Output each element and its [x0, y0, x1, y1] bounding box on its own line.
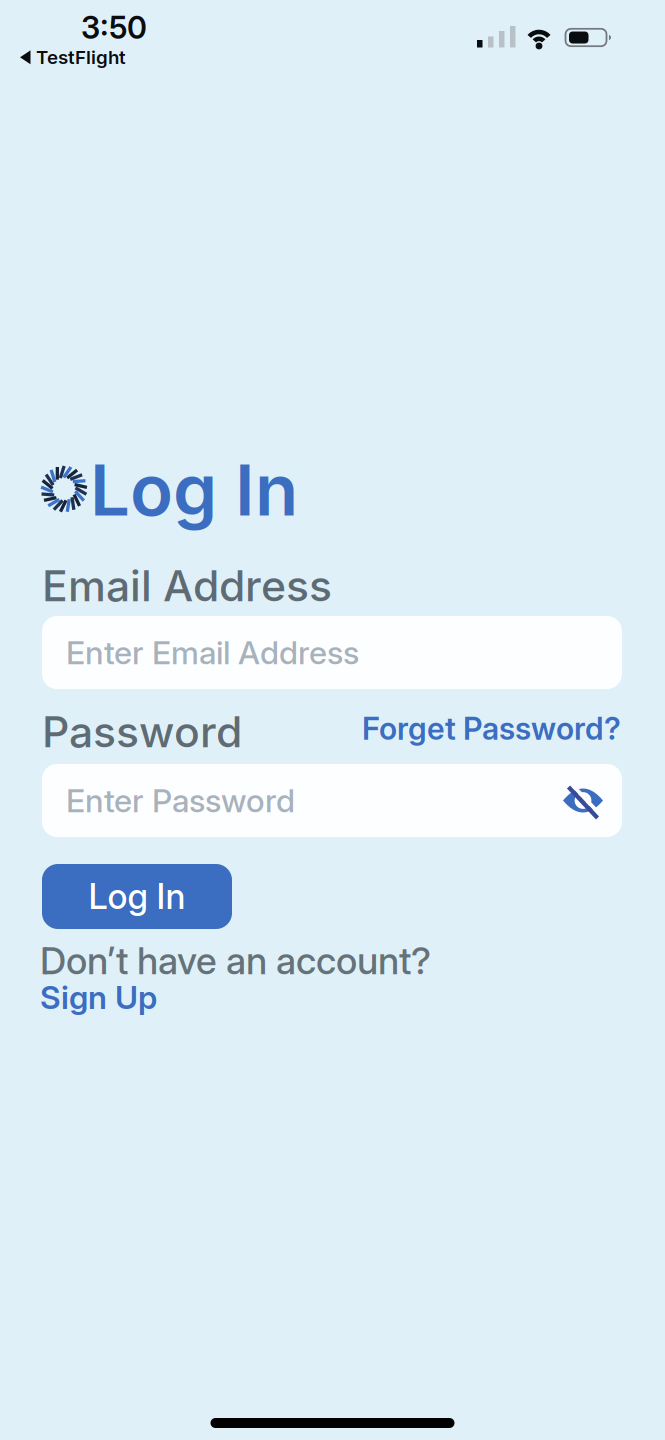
- staticText: 3:50: [81, 9, 147, 46]
- button[interactable]: Enter Password: [42, 764, 622, 837]
- staticText: Email Address: [42, 560, 332, 612]
- button[interactable]: Show password: [562, 784, 604, 816]
- staticText: TestFlight: [36, 46, 126, 69]
- staticText: Don’t have an account?: [40, 938, 431, 983]
- staticText: Log In: [88, 875, 185, 917]
- button[interactable]: Sign Up: [40, 978, 157, 1017]
- staticText: Log In: [90, 447, 298, 532]
- button[interactable]: Log In: [42, 864, 232, 929]
- button[interactable]: Forget Password?: [362, 710, 621, 747]
- staticText: Password: [42, 706, 242, 758]
- staticText: Enter Password: [66, 781, 295, 820]
- button[interactable]: Enter Email Address: [42, 616, 622, 689]
- button[interactable]: Back to TestFlight: [20, 46, 126, 69]
- staticText: Forget Password?: [362, 710, 621, 747]
- staticText: Enter Email Address: [66, 633, 359, 672]
- staticText: Sign Up: [40, 978, 157, 1017]
